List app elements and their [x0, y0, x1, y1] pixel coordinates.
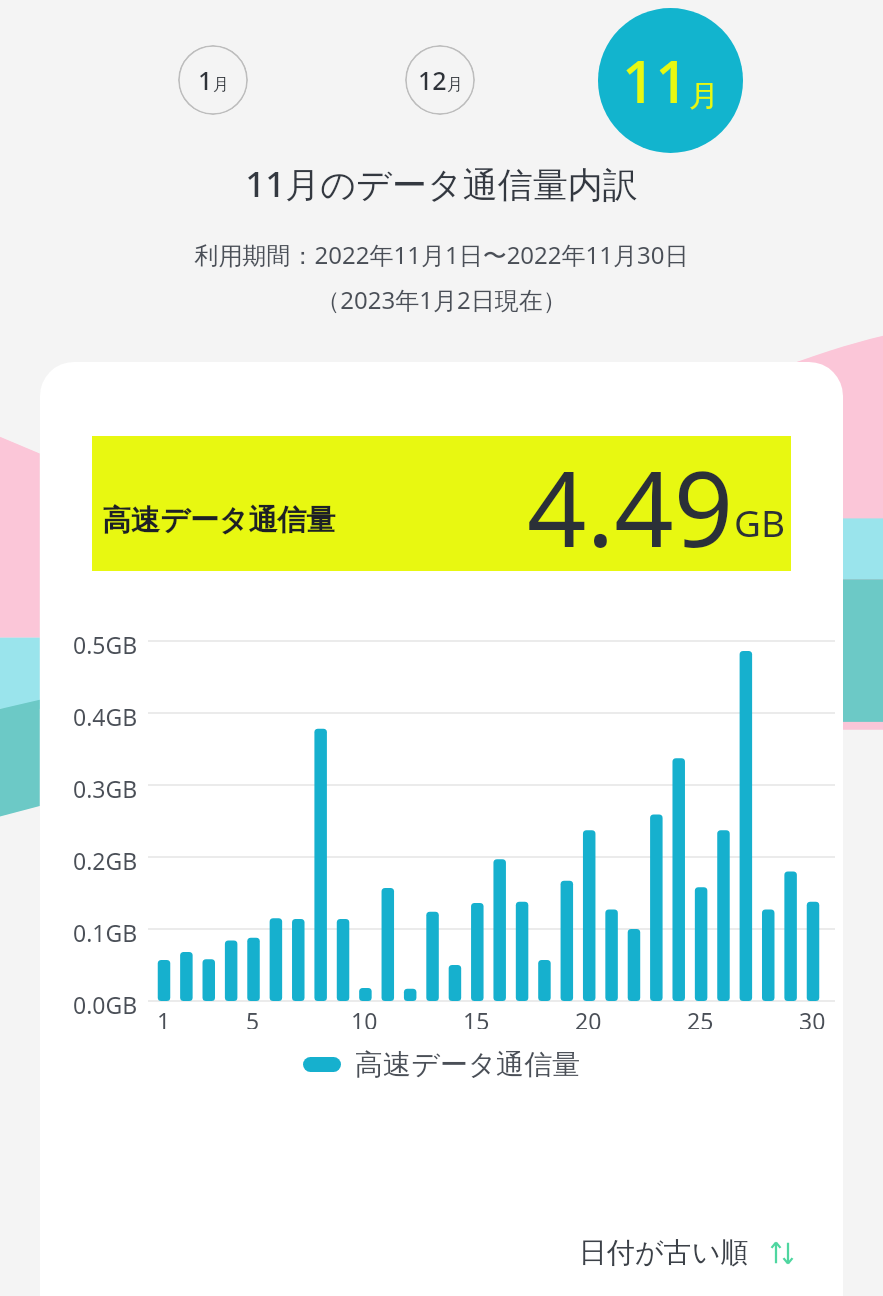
staticText: GB	[734, 497, 785, 547]
staticText: 1	[157, 1005, 171, 1029]
staticText: 日付が古い順	[579, 1235, 749, 1270]
staticText: 5	[246, 1005, 260, 1029]
staticText: 12	[418, 63, 447, 97]
staticText: 月	[689, 77, 719, 115]
staticText: 10	[351, 1005, 378, 1029]
staticText: 月	[213, 75, 229, 95]
other: Change sort order	[767, 1238, 797, 1268]
staticText: 0.1GB	[73, 917, 138, 948]
button[interactable]: 日付が古い順	[579, 1235, 797, 1270]
staticText: 1	[198, 63, 213, 97]
staticText: 0.4GB	[73, 701, 138, 732]
staticText: 30	[799, 1005, 826, 1029]
staticText: 4.49	[527, 436, 734, 565]
staticText: 25	[687, 1005, 714, 1029]
staticText: （2023年1月2日現在）	[0, 283, 883, 316]
staticText: 0.5GB	[73, 629, 138, 660]
staticText: 0.0GB	[73, 989, 138, 1020]
staticText: 0.2GB	[73, 845, 138, 876]
staticText: 高速データ通信量	[102, 502, 336, 539]
staticText: 高速データ通信量	[355, 1047, 581, 1082]
staticText: 15	[463, 1005, 490, 1029]
staticText: 利用期間：2022年11月1日〜2022年11月30日	[0, 238, 883, 271]
button[interactable]: 1	[178, 45, 248, 115]
button[interactable]: 11	[598, 8, 743, 153]
staticText: 11	[622, 41, 689, 120]
button[interactable]: 12	[405, 45, 475, 115]
staticText: 11月のデータ通信量内訳	[0, 160, 883, 208]
staticText: 0.3GB	[73, 773, 138, 804]
staticText: 20	[575, 1005, 602, 1029]
staticText: 月	[447, 75, 463, 95]
